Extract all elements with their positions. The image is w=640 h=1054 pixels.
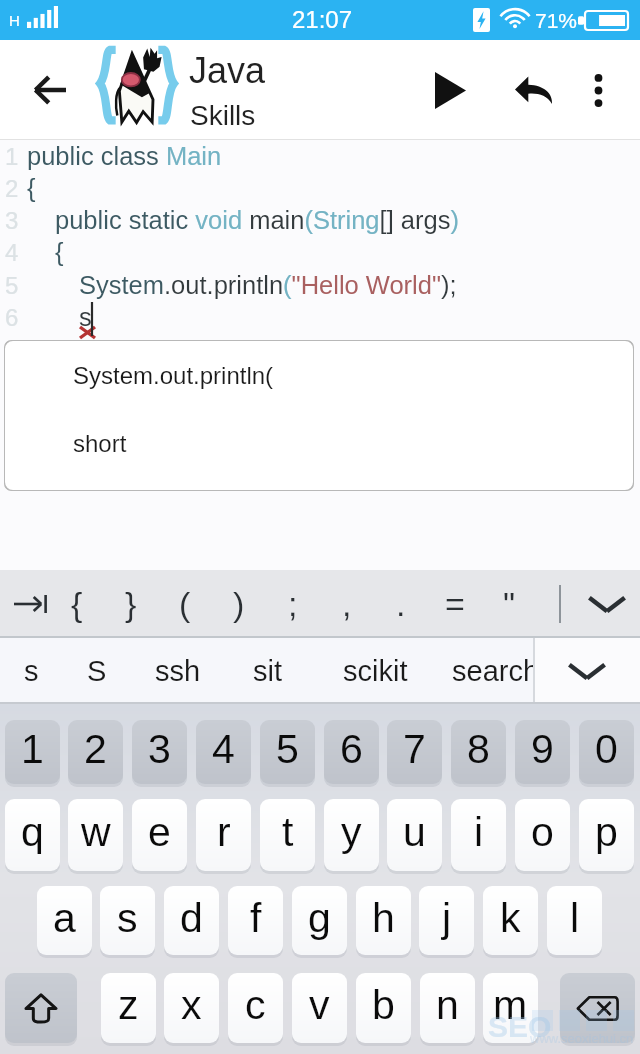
- button[interactable]: =: [428, 570, 482, 638]
- button[interactable]: z: [101, 973, 156, 1043]
- staticText: public static void main(String[] args): [55, 206, 459, 234]
- button[interactable]: h: [356, 886, 411, 955]
- staticText: .: [396, 585, 406, 623]
- staticText: s: [24, 655, 39, 687]
- staticText: 4: [212, 726, 235, 772]
- button[interactable]: s: [0, 638, 76, 704]
- button[interactable]: 4: [196, 720, 251, 784]
- button[interactable]: x: [164, 973, 219, 1043]
- button[interactable]: a: [37, 886, 92, 955]
- button[interactable]: 7: [387, 720, 442, 784]
- button[interactable]: Backspace: [560, 973, 635, 1043]
- staticText: SEO: [488, 1010, 552, 1044]
- button[interactable]: v: [292, 973, 347, 1043]
- button[interactable]: o: [515, 799, 570, 871]
- staticText: 5: [5, 272, 19, 299]
- button[interactable]: 1: [5, 720, 60, 784]
- button[interactable]: j: [419, 886, 474, 955]
- staticText: short: [73, 430, 127, 457]
- staticText: {: [71, 585, 83, 623]
- button[interactable]: }: [104, 570, 158, 638]
- button[interactable]: More suggestions: [533, 638, 640, 704]
- staticText: t: [282, 809, 294, 855]
- button[interactable]: Run: [415, 40, 485, 140]
- staticText: 3: [148, 726, 171, 772]
- button[interactable]: short: [56, 418, 496, 468]
- staticText: i: [474, 809, 484, 855]
- staticText: Java: [189, 50, 266, 90]
- staticText: y: [341, 809, 362, 855]
- button[interactable]: .: [374, 570, 428, 638]
- button[interactable]: c: [228, 973, 283, 1043]
- button[interactable]: search: [451, 638, 541, 704]
- staticText: z: [118, 982, 139, 1028]
- button[interactable]: ): [212, 570, 266, 638]
- staticText: r: [217, 809, 231, 855]
- button[interactable]: s: [100, 886, 155, 955]
- button[interactable]: ;: [266, 570, 320, 638]
- button[interactable]: g: [292, 886, 347, 955]
- button[interactable]: n: [420, 973, 475, 1043]
- staticText: 7: [403, 726, 426, 772]
- button[interactable]: Shift: [5, 973, 77, 1043]
- button[interactable]: i: [451, 799, 506, 871]
- button[interactable]: scikit: [330, 638, 420, 704]
- button[interactable]: Back: [16, 40, 84, 140]
- staticText: 2: [84, 726, 107, 772]
- staticText: 8: [467, 726, 490, 772]
- button[interactable]: Tab: [0, 570, 62, 638]
- button[interactable]: 8: [451, 720, 506, 784]
- staticText: w: [81, 809, 111, 855]
- button[interactable]: 6: [324, 720, 379, 784]
- button[interactable]: {: [50, 570, 104, 638]
- button[interactable]: sit: [222, 638, 312, 704]
- staticText: ,: [342, 585, 352, 623]
- staticText: H: [9, 12, 20, 29]
- button[interactable]: u: [387, 799, 442, 871]
- button[interactable]: ssh: [133, 638, 223, 704]
- staticText: j: [442, 895, 452, 941]
- button[interactable]: d: [164, 886, 219, 955]
- button[interactable]: 0: [579, 720, 634, 784]
- button[interactable]: 9: [515, 720, 570, 784]
- staticText: System.out.println("Hello World");: [79, 271, 457, 299]
- staticText: q: [21, 809, 44, 855]
- staticText: Skills: [190, 100, 256, 131]
- button[interactable]: q: [5, 799, 60, 871]
- button[interactable]: l: [547, 886, 602, 955]
- button[interactable]: e: [132, 799, 187, 871]
- staticText: 0: [595, 726, 618, 772]
- button[interactable]: 2: [68, 720, 123, 784]
- staticText: d: [180, 895, 203, 941]
- button[interactable]: More options: [566, 40, 630, 140]
- button[interactable]: t: [260, 799, 315, 871]
- button[interactable]: r: [196, 799, 251, 871]
- button[interactable]: System.out.println(: [56, 350, 496, 400]
- button[interactable]: y: [324, 799, 379, 871]
- button[interactable]: p: [579, 799, 634, 871]
- staticText: sit: [253, 655, 282, 687]
- button[interactable]: Hide toolbar: [573, 570, 640, 638]
- staticText: www.seoxiehui.cn: [530, 1031, 634, 1046]
- staticText: f: [250, 895, 262, 941]
- button[interactable]: S: [52, 638, 142, 704]
- button[interactable]: ,: [320, 570, 374, 638]
- button[interactable]: ": [482, 570, 536, 638]
- staticText: ": [503, 585, 516, 623]
- button[interactable]: Undo: [498, 40, 568, 140]
- staticText: ): [233, 585, 245, 623]
- button[interactable]: (: [158, 570, 212, 638]
- button[interactable]: w: [68, 799, 123, 871]
- staticText: l: [570, 895, 580, 941]
- button[interactable]: k: [483, 886, 538, 955]
- staticText: S: [87, 655, 107, 687]
- button[interactable]: m: [483, 973, 538, 1043]
- staticText: a: [53, 895, 76, 941]
- staticText: 9: [531, 726, 554, 772]
- button[interactable]: f: [228, 886, 283, 955]
- button[interactable]: b: [356, 973, 411, 1043]
- button[interactable]: 3: [132, 720, 187, 784]
- staticText: scikit: [343, 655, 408, 687]
- button[interactable]: 5: [260, 720, 315, 784]
- staticText: b: [372, 982, 395, 1028]
